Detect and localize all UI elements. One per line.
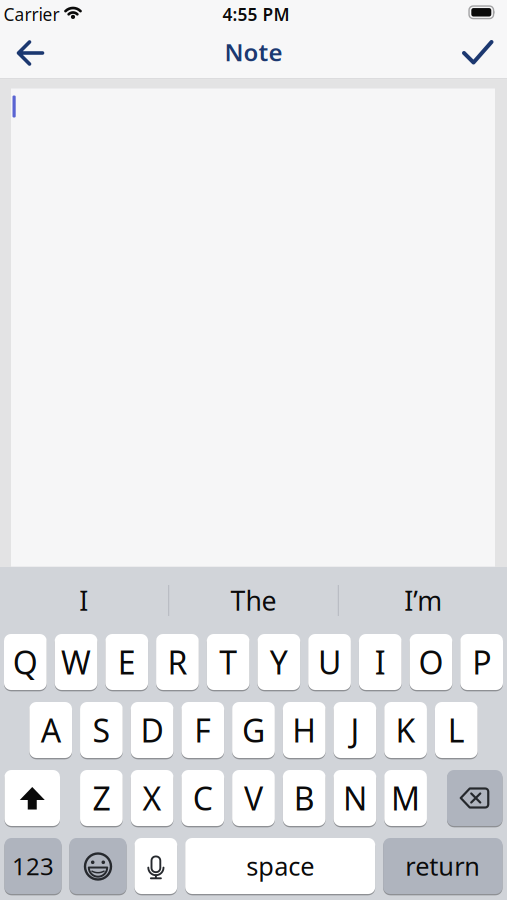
staticText: I (79, 583, 88, 618)
button[interactable]: H (283, 702, 326, 758)
button[interactable] (447, 770, 502, 826)
button[interactable]: R (156, 634, 199, 690)
staticText: 123 (12, 850, 54, 882)
button[interactable] (455, 31, 499, 75)
button[interactable]: I’m (339, 567, 507, 634)
staticText: I’m (404, 583, 442, 618)
button[interactable]: S (80, 702, 123, 758)
button[interactable]: F (181, 702, 224, 758)
button[interactable]: Z (80, 770, 123, 826)
staticText: N (343, 777, 367, 819)
staticText: 4:55 PM (222, 3, 289, 26)
staticText: Note (224, 36, 282, 68)
staticText: S (92, 709, 110, 751)
button[interactable]: A (29, 702, 72, 758)
button[interactable]: C (181, 770, 224, 826)
staticText: L (448, 709, 465, 751)
button[interactable]: N (334, 770, 376, 826)
staticText: R (167, 641, 187, 683)
staticText: W (61, 641, 91, 683)
staticText: H (292, 709, 316, 751)
button[interactable]: M (384, 770, 427, 826)
button[interactable]: G (232, 702, 275, 758)
button[interactable]: J (334, 702, 376, 758)
button[interactable]: E (105, 634, 148, 690)
button[interactable]: The (169, 567, 338, 634)
staticText: return (405, 849, 480, 883)
staticText: Carrier (3, 3, 59, 26)
button[interactable]: V (232, 770, 275, 826)
button[interactable]: return (383, 838, 502, 894)
staticText: P (472, 641, 491, 683)
button[interactable] (69, 838, 126, 894)
staticText: Z (92, 777, 110, 819)
button[interactable] (134, 838, 177, 894)
staticText: E (118, 641, 136, 683)
button[interactable]: P (460, 634, 503, 690)
button[interactable]: B (283, 770, 326, 826)
button[interactable]: K (384, 702, 427, 758)
staticText: Y (270, 641, 288, 683)
staticText: D (141, 709, 164, 751)
button[interactable]: 123 (4, 838, 61, 894)
button[interactable]: D (131, 702, 173, 758)
button[interactable]: Q (4, 634, 47, 690)
button[interactable]: O (410, 634, 452, 690)
staticText: O (418, 641, 443, 683)
button[interactable]: Y (257, 634, 300, 690)
staticText: F (194, 709, 211, 751)
staticText: I (375, 641, 386, 683)
staticText: X (143, 777, 162, 819)
button[interactable]: U (308, 634, 351, 690)
staticText: A (41, 709, 61, 751)
button[interactable]: I (0, 567, 168, 634)
staticText: U (318, 641, 341, 683)
button[interactable]: W (55, 634, 97, 690)
button[interactable]: space (185, 838, 375, 894)
button[interactable]: X (131, 770, 173, 826)
staticText: V (244, 777, 263, 819)
staticText: T (219, 641, 237, 683)
button[interactable]: I (359, 634, 402, 690)
staticText: The (230, 583, 276, 618)
button[interactable]: T (207, 634, 249, 690)
button[interactable]: L (435, 702, 478, 758)
staticText: M (391, 777, 420, 819)
staticText: J (350, 709, 359, 751)
staticText: Q (13, 641, 38, 683)
staticText: G (242, 709, 265, 751)
staticText: B (294, 777, 315, 819)
staticText: space (246, 849, 314, 883)
button[interactable] (8, 31, 52, 75)
staticText: K (396, 709, 416, 751)
button[interactable] (4, 770, 60, 826)
staticText: C (193, 777, 213, 819)
